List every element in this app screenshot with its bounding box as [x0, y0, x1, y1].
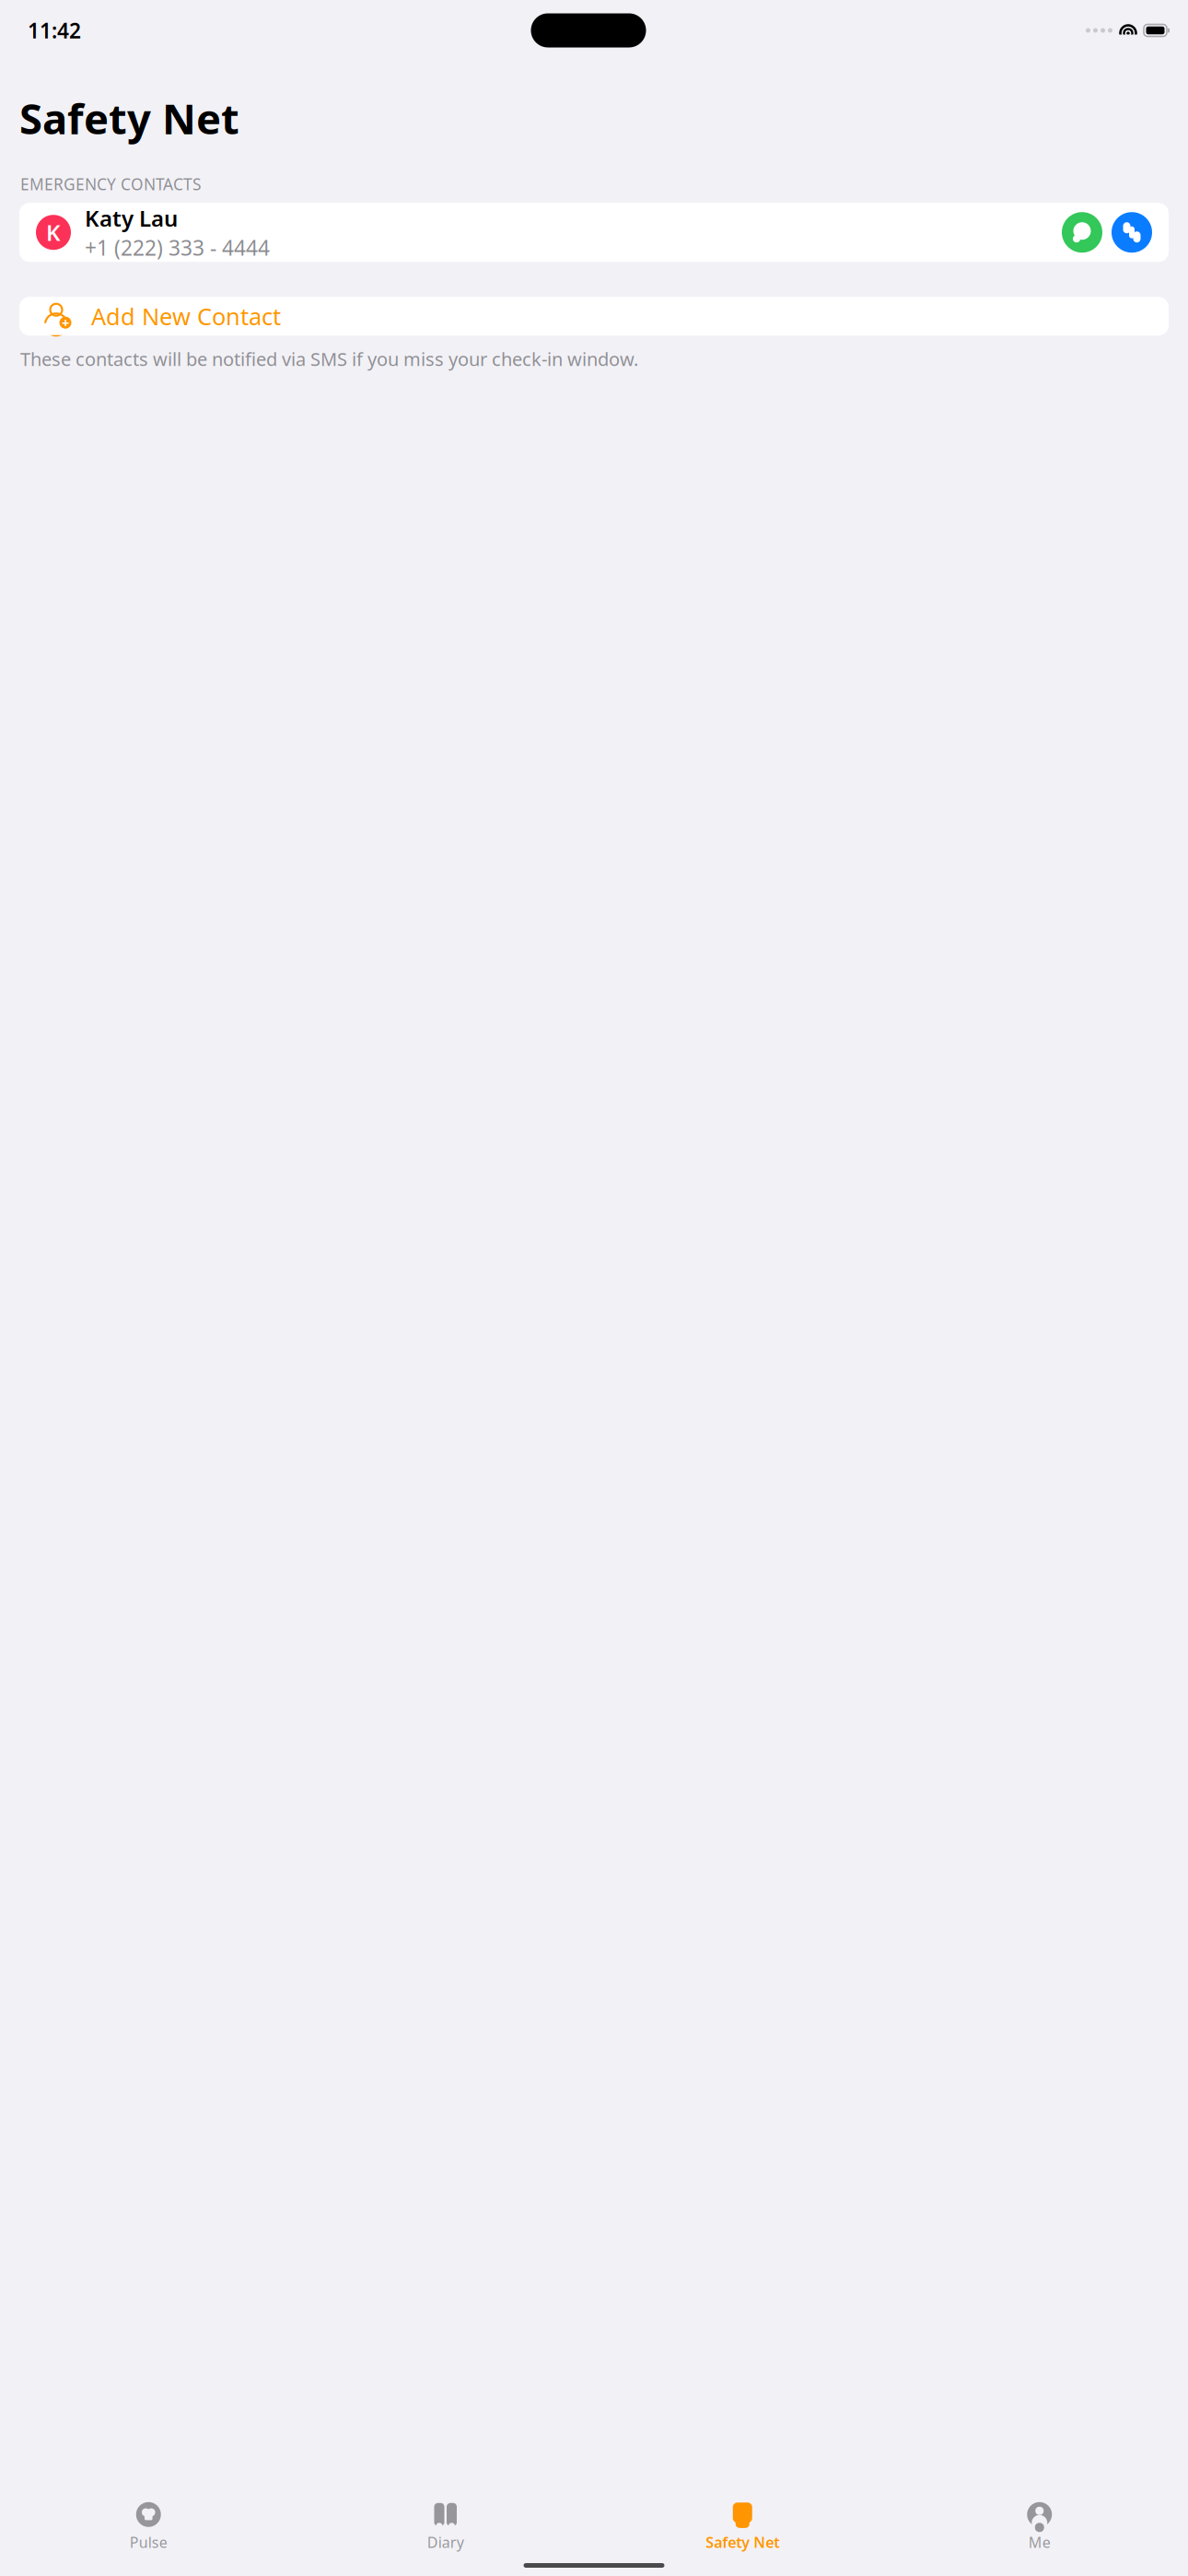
staticText: Safety Net [19, 90, 239, 146]
button[interactable]: Diary [297, 2498, 594, 2556]
staticText: Add New Contact [91, 301, 281, 332]
staticText: Safety Net [706, 2533, 779, 2552]
staticText: These contacts will be notified via SMS … [20, 347, 638, 371]
button[interactable]: Pulse [0, 2498, 297, 2556]
button[interactable]: Safety Net [594, 2498, 891, 2556]
staticText: Pulse [130, 2533, 167, 2552]
staticText: Diary [427, 2533, 464, 2552]
staticText: Me [1028, 2533, 1051, 2552]
button[interactable]: Message Katy Lau [1062, 212, 1102, 253]
staticText: K [46, 218, 61, 247]
staticText: 11:42 [28, 16, 81, 44]
staticText: + [62, 314, 69, 332]
button[interactable]: + [19, 297, 1169, 336]
staticText: EMERGENCY CONTACTS [20, 173, 202, 195]
staticText: Katy Lau [85, 203, 178, 233]
button[interactable]: Call Katy Lau [1112, 212, 1152, 253]
button[interactable]: Me [891, 2498, 1188, 2556]
staticText: +1 (222) 333 - 4444 [85, 234, 270, 261]
